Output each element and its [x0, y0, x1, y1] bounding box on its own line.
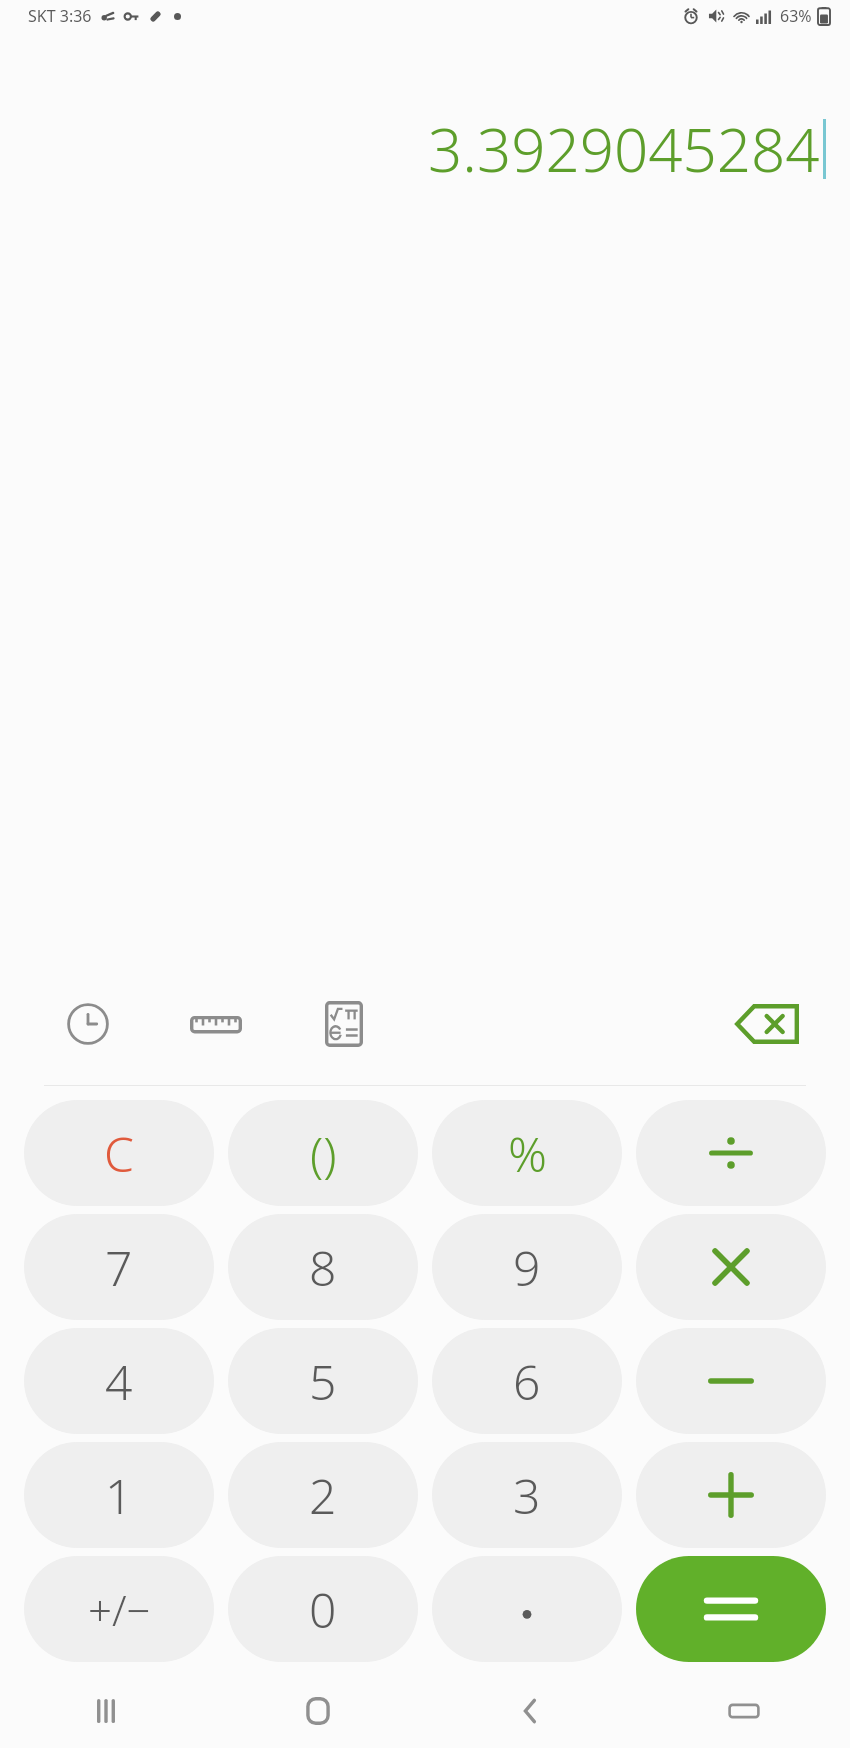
- button[interactable]: 6: [432, 1328, 622, 1434]
- button[interactable]: History: [52, 988, 124, 1060]
- button[interactable]: 7: [24, 1214, 214, 1320]
- staticText: +/−: [88, 1581, 151, 1638]
- button[interactable]: +/−: [24, 1556, 214, 1662]
- button[interactable]: 5: [228, 1328, 418, 1434]
- button[interactable]: 4: [24, 1328, 214, 1434]
- staticText: 63%: [780, 5, 812, 27]
- staticText: 5: [309, 1349, 337, 1414]
- button[interactable]: Recent apps: [0, 1674, 212, 1748]
- button[interactable]: (): [228, 1100, 418, 1206]
- staticText: %: [508, 1121, 547, 1186]
- button[interactable]: Backspace: [724, 981, 810, 1067]
- button[interactable]: Home: [212, 1674, 424, 1748]
- staticText: SKT 3:36: [28, 5, 92, 27]
- staticText: 2: [309, 1463, 337, 1528]
- staticText: 3.3929045284: [428, 108, 820, 190]
- staticText: C: [104, 1121, 134, 1186]
- button[interactable]: 1: [24, 1442, 214, 1548]
- button[interactable]: 0: [228, 1556, 418, 1662]
- button[interactable]: Scientific calculator: [308, 988, 380, 1060]
- button[interactable]: C: [24, 1100, 214, 1206]
- button[interactable]: [636, 1556, 826, 1662]
- button[interactable]: [636, 1442, 826, 1548]
- staticText: (): [310, 1121, 337, 1186]
- staticText: 8: [309, 1235, 337, 1300]
- button[interactable]: Hide keyboard: [637, 1674, 850, 1748]
- staticText: 7: [105, 1235, 133, 1300]
- button[interactable]: Back: [424, 1674, 637, 1748]
- staticText: 9: [513, 1235, 541, 1300]
- button[interactable]: 3: [432, 1442, 622, 1548]
- staticText: 3: [513, 1463, 541, 1528]
- button[interactable]: Unit converter: [180, 988, 252, 1060]
- button[interactable]: %: [432, 1100, 622, 1206]
- button[interactable]: 9: [432, 1214, 622, 1320]
- staticText: 4: [105, 1349, 133, 1414]
- button[interactable]: 2: [228, 1442, 418, 1548]
- staticText: 0: [309, 1577, 337, 1642]
- staticText: 6: [513, 1349, 541, 1414]
- staticText: 1: [105, 1463, 133, 1528]
- button[interactable]: 8: [228, 1214, 418, 1320]
- button[interactable]: [432, 1556, 622, 1662]
- button[interactable]: [636, 1100, 826, 1206]
- button[interactable]: [636, 1328, 826, 1434]
- button[interactable]: [636, 1214, 826, 1320]
